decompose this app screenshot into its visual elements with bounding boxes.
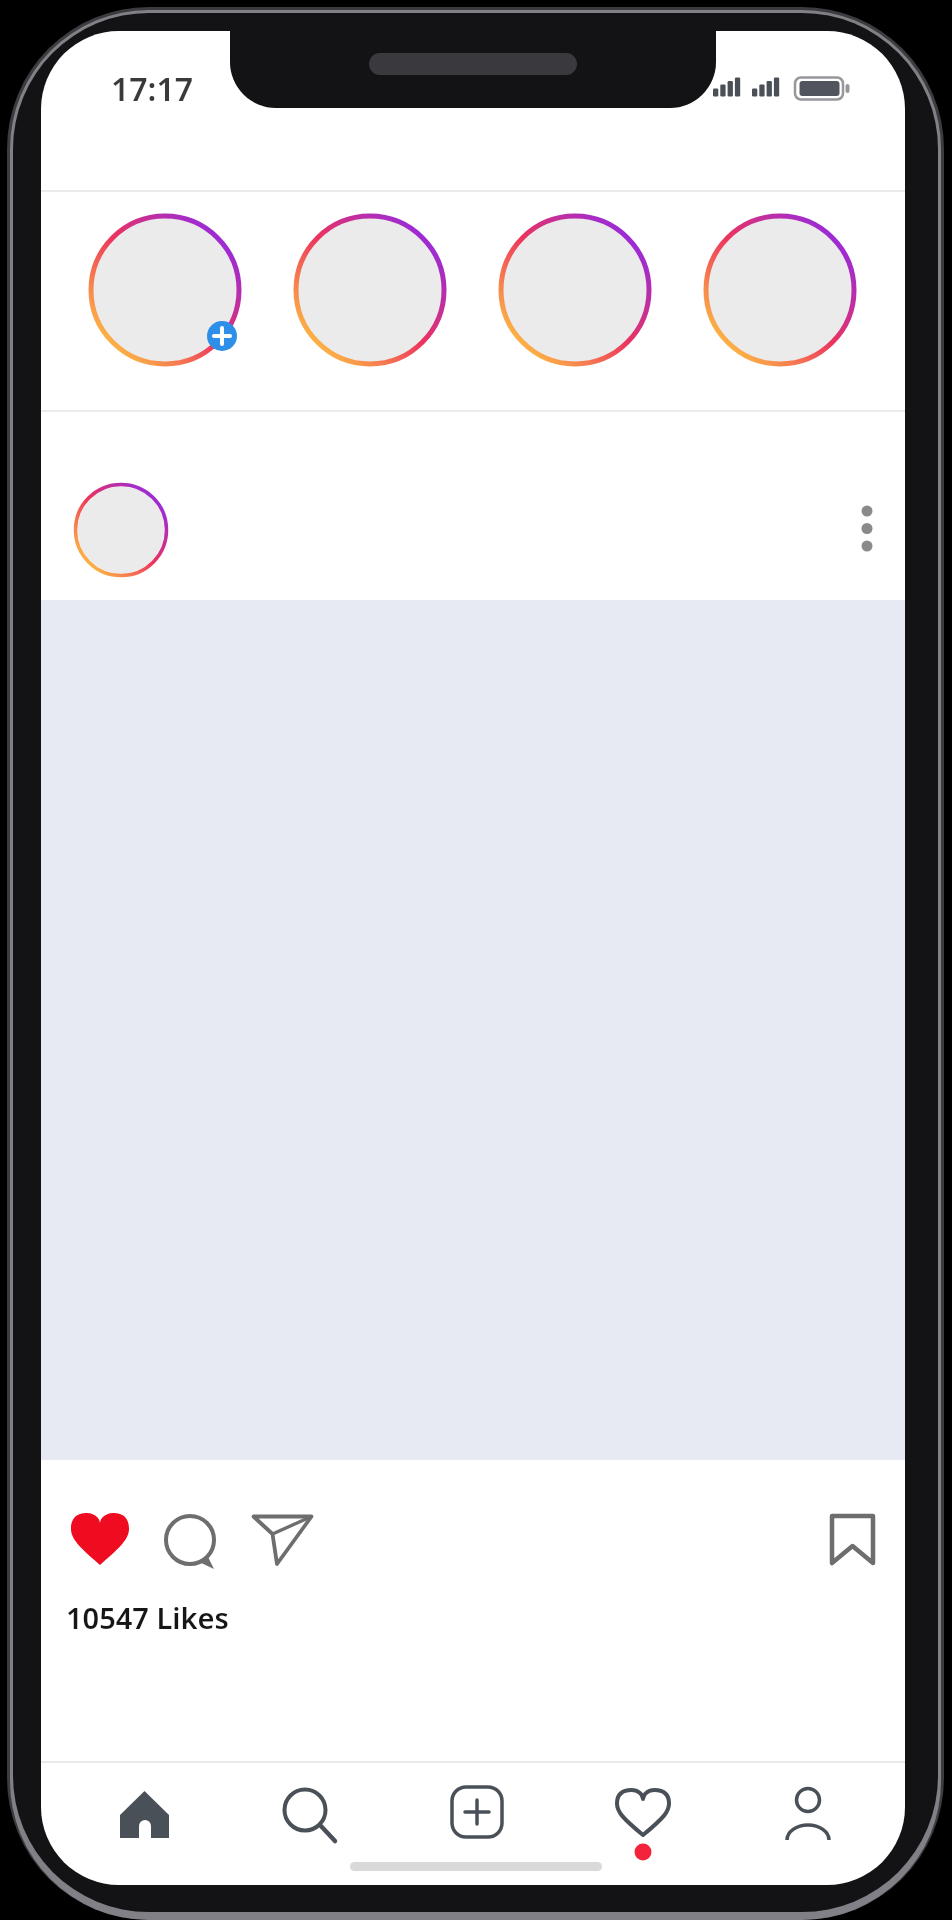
- button[interactable]: [160, 1510, 224, 1576]
- button[interactable]: [497, 212, 653, 368]
- staticText: 10547 Likes: [66, 1598, 229, 1637]
- button[interactable]: [73, 482, 169, 578]
- button[interactable]: [269, 1774, 345, 1850]
- staticText: 17:17: [111, 67, 194, 111]
- button[interactable]: [439, 1774, 515, 1850]
- button[interactable]: [843, 495, 891, 563]
- button[interactable]: [826, 1510, 882, 1572]
- button[interactable]: [106, 1776, 182, 1852]
- button[interactable]: [770, 1777, 846, 1853]
- button[interactable]: [702, 212, 858, 368]
- button[interactable]: [250, 1510, 316, 1570]
- button[interactable]: [87, 212, 243, 368]
- button[interactable]: [64, 1506, 136, 1572]
- button[interactable]: [292, 212, 448, 368]
- button[interactable]: [605, 1772, 681, 1864]
